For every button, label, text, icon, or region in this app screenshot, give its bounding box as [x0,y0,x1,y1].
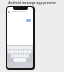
staticText: Android message app preview [0,1,64,5]
